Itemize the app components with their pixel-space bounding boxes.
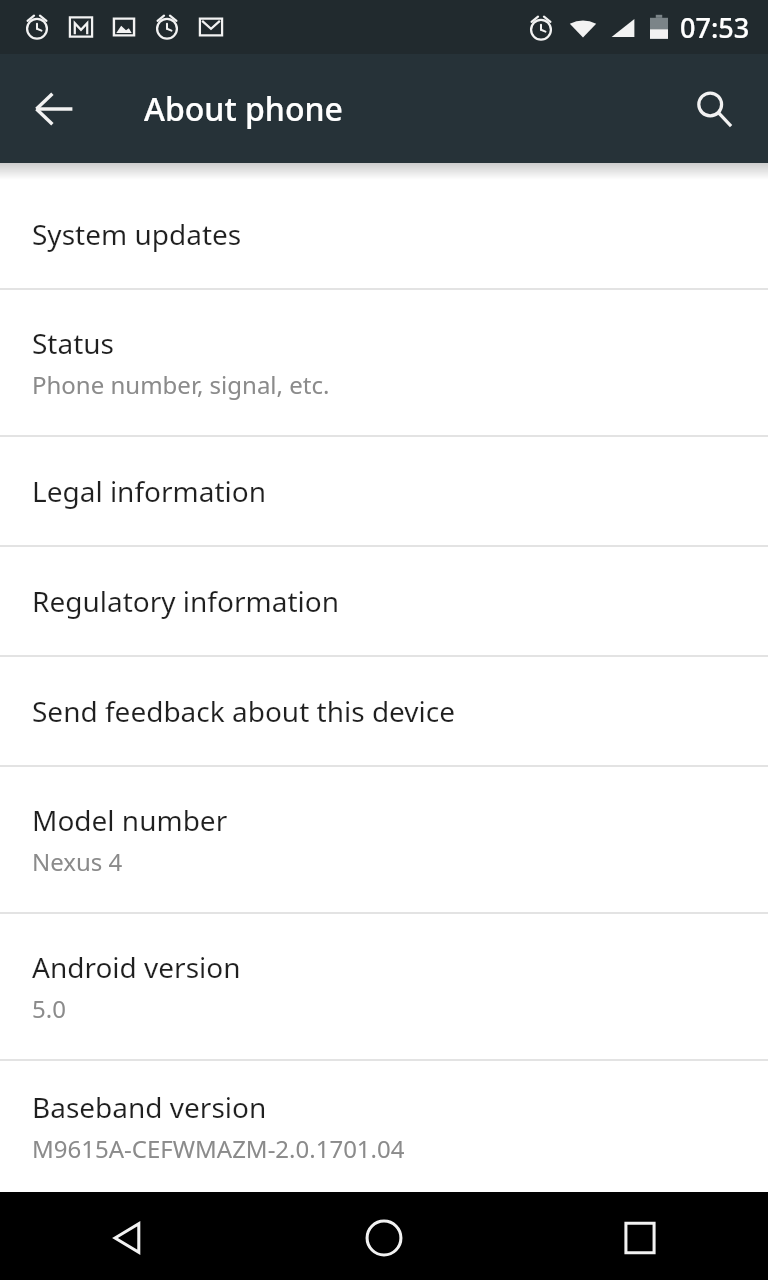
button[interactable]: Regulatory information <box>0 547 768 655</box>
button[interactable]: Model number <box>0 767 768 912</box>
staticText: System updates <box>32 215 242 253</box>
button[interactable]: Android version <box>0 914 768 1059</box>
button[interactable]: Back <box>0 1192 256 1280</box>
button[interactable]: Search <box>674 69 754 149</box>
button[interactable]: Send feedback about this device <box>0 657 768 765</box>
button[interactable]: Status <box>0 290 768 435</box>
button[interactable]: Back <box>14 69 94 149</box>
staticText: Legal information <box>32 472 267 510</box>
staticText: Phone number, signal, etc. <box>32 368 330 401</box>
button[interactable]: Home <box>256 1192 512 1280</box>
button[interactable]: Baseband version <box>0 1061 768 1192</box>
staticText: Send feedback about this device <box>32 692 456 730</box>
staticText: Baseband version <box>32 1088 267 1126</box>
staticText: About phone <box>144 87 343 131</box>
staticText: M9615A-CEFWMAZM-2.0.1701.04 <box>32 1132 405 1165</box>
button[interactable]: Recent apps <box>512 1192 768 1280</box>
staticText: Status <box>32 324 115 362</box>
staticText: 5.0 <box>32 992 66 1025</box>
staticText: Regulatory information <box>32 582 339 620</box>
staticText: Nexus 4 <box>32 845 123 878</box>
staticText: Model number <box>32 801 228 839</box>
button[interactable]: Legal information <box>0 437 768 545</box>
staticText: 07:53 <box>680 9 750 46</box>
button[interactable]: System updates <box>0 180 768 288</box>
staticText: Android version <box>32 948 241 986</box>
